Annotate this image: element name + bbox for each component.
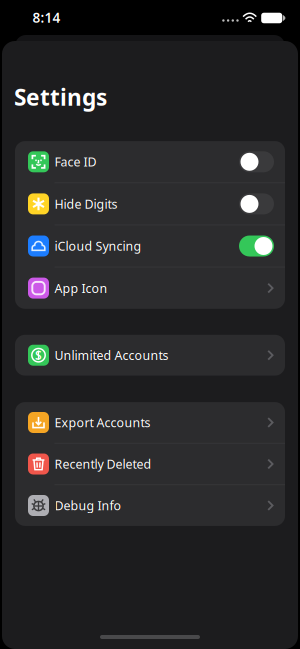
staticText: App Icon [54, 280, 107, 297]
staticText: Recently Deleted [54, 456, 151, 472]
staticText: 8:14 [32, 8, 60, 27]
button[interactable]: iCloud Syncing [15, 225, 285, 267]
staticText: Hide Digits [54, 195, 117, 212]
button[interactable]: Export Accounts [15, 402, 285, 443]
staticText: S [35, 347, 42, 363]
button[interactable]: S [15, 335, 285, 376]
staticText: Unlimited Accounts [54, 347, 168, 364]
staticText: Debug Info [54, 497, 121, 514]
button[interactable]: App Icon [15, 267, 285, 309]
button[interactable]: Recently Deleted [15, 444, 285, 484]
button[interactable]: Hide Digits [15, 183, 285, 225]
staticText: Settings [14, 82, 107, 112]
staticText: Face ID [54, 153, 96, 170]
button[interactable]: Face ID [15, 141, 285, 182]
staticText: iCloud Syncing [54, 238, 141, 254]
button[interactable]: Debug Info [15, 485, 285, 526]
staticText: Export Accounts [54, 414, 150, 431]
